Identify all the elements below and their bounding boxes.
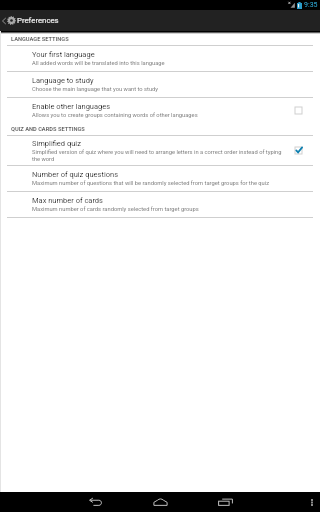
button[interactable]: More options — [304, 494, 320, 510]
button[interactable]: Your first language — [0, 46, 320, 72]
button[interactable]: Max number of cards — [0, 192, 320, 218]
staticText: Simplified version of quiz where you wil… — [32, 149, 285, 162]
button[interactable]: Enable other languages — [0, 98, 320, 123]
staticText: Max number of cards — [32, 196, 103, 205]
button[interactable]: Back — [85, 492, 105, 512]
button[interactable]: Language to study — [0, 72, 320, 98]
staticText: Choose the main language that you want t… — [32, 86, 159, 93]
staticText: Maximum number of cards randomly selecte… — [32, 206, 199, 213]
staticText: Maximum number of questions that will be… — [32, 180, 270, 187]
staticText: 9:35 — [304, 1, 318, 9]
staticText: All added words will be translated into … — [32, 60, 165, 67]
staticText: Your first language — [32, 50, 95, 59]
staticText: Preferences — [17, 16, 59, 25]
button[interactable]: Checked — [293, 145, 304, 156]
staticText: Number of quiz questions — [32, 170, 119, 179]
button[interactable]: Simplified quiz — [0, 136, 320, 166]
button[interactable]: Navigate up — [0, 13, 18, 28]
button[interactable]: Recent apps — [215, 492, 235, 512]
button[interactable]: Home — [150, 492, 170, 512]
staticText: LANGUAGE SETTINGS — [11, 36, 69, 43]
staticText: Enable other languages — [32, 102, 111, 111]
button[interactable]: Number of quiz questions — [0, 166, 320, 192]
staticText: Allows you to create groups containing w… — [32, 112, 198, 119]
staticText: Simplified quiz — [32, 139, 81, 148]
staticText: QUIZ AND CARDS SETTINGS — [11, 126, 85, 133]
staticText: Language to study — [32, 76, 94, 85]
button[interactable]: Unchecked — [293, 105, 304, 116]
